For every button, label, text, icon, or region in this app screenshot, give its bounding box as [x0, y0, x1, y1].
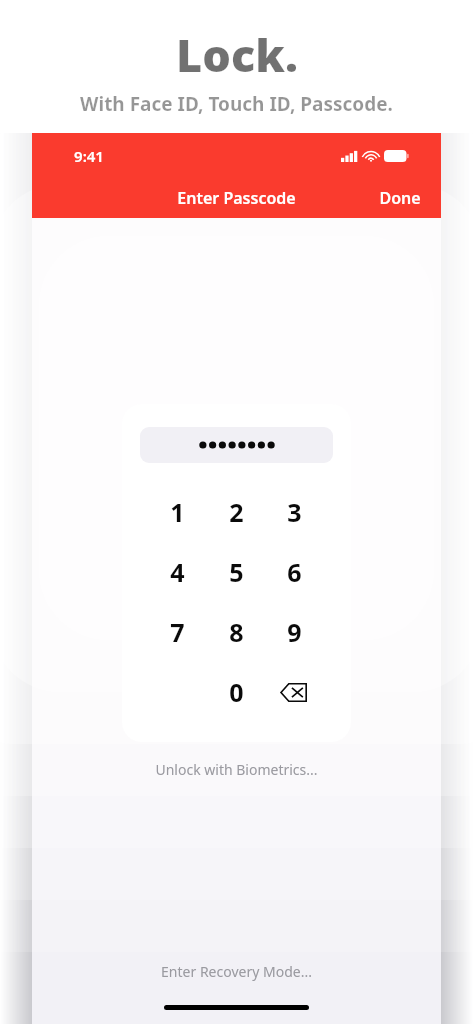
button[interactable] — [140, 427, 333, 463]
staticText: 7 — [170, 615, 185, 649]
button[interactable]: 0 — [212, 672, 260, 712]
button[interactable]: Done — [371, 183, 429, 213]
staticText: 3 — [287, 495, 302, 529]
button[interactable]: 5 — [212, 552, 260, 592]
staticText: Enter Passcode — [177, 187, 296, 209]
button[interactable]: 7 — [153, 612, 201, 652]
button[interactable]: 8 — [212, 612, 260, 652]
staticText: 9 — [287, 615, 302, 649]
staticText: 2 — [229, 495, 244, 529]
button[interactable]: Enter Passcode — [169, 183, 304, 213]
staticText: Enter Recovery Mode... — [161, 962, 312, 981]
staticText: 4 — [170, 555, 185, 589]
staticText: 5 — [229, 555, 244, 589]
button[interactable]: 2 — [212, 492, 260, 532]
button[interactable]: 3 — [270, 492, 318, 532]
button[interactable]: 6 — [270, 552, 318, 592]
staticText: Unlock with Biometrics... — [155, 760, 318, 779]
button[interactable]: Unlock with Biometrics... — [145, 755, 328, 784]
button[interactable]: 9 — [270, 612, 318, 652]
staticText: 8 — [229, 615, 244, 649]
button[interactable]: 1 — [153, 492, 201, 532]
button[interactable]: 4 — [153, 552, 201, 592]
staticText: 0 — [229, 675, 244, 709]
staticText: 1 — [170, 495, 185, 529]
button[interactable]: Backspace — [270, 672, 318, 712]
staticText: With Face ID, Touch ID, Passcode. — [80, 91, 393, 117]
staticText: Done — [379, 187, 421, 209]
staticText: 9:41 — [74, 146, 104, 166]
staticText: 6 — [287, 555, 302, 589]
staticText: Lock. — [176, 24, 298, 85]
button[interactable]: Enter Recovery Mode... — [151, 957, 322, 986]
